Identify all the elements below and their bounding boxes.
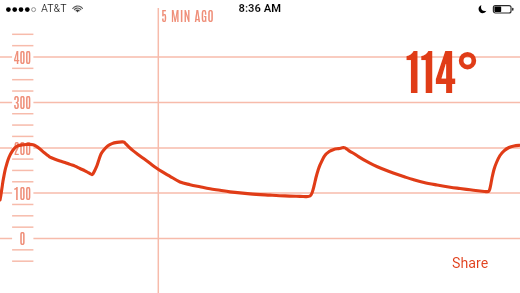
button[interactable]: Share [448, 250, 494, 272]
